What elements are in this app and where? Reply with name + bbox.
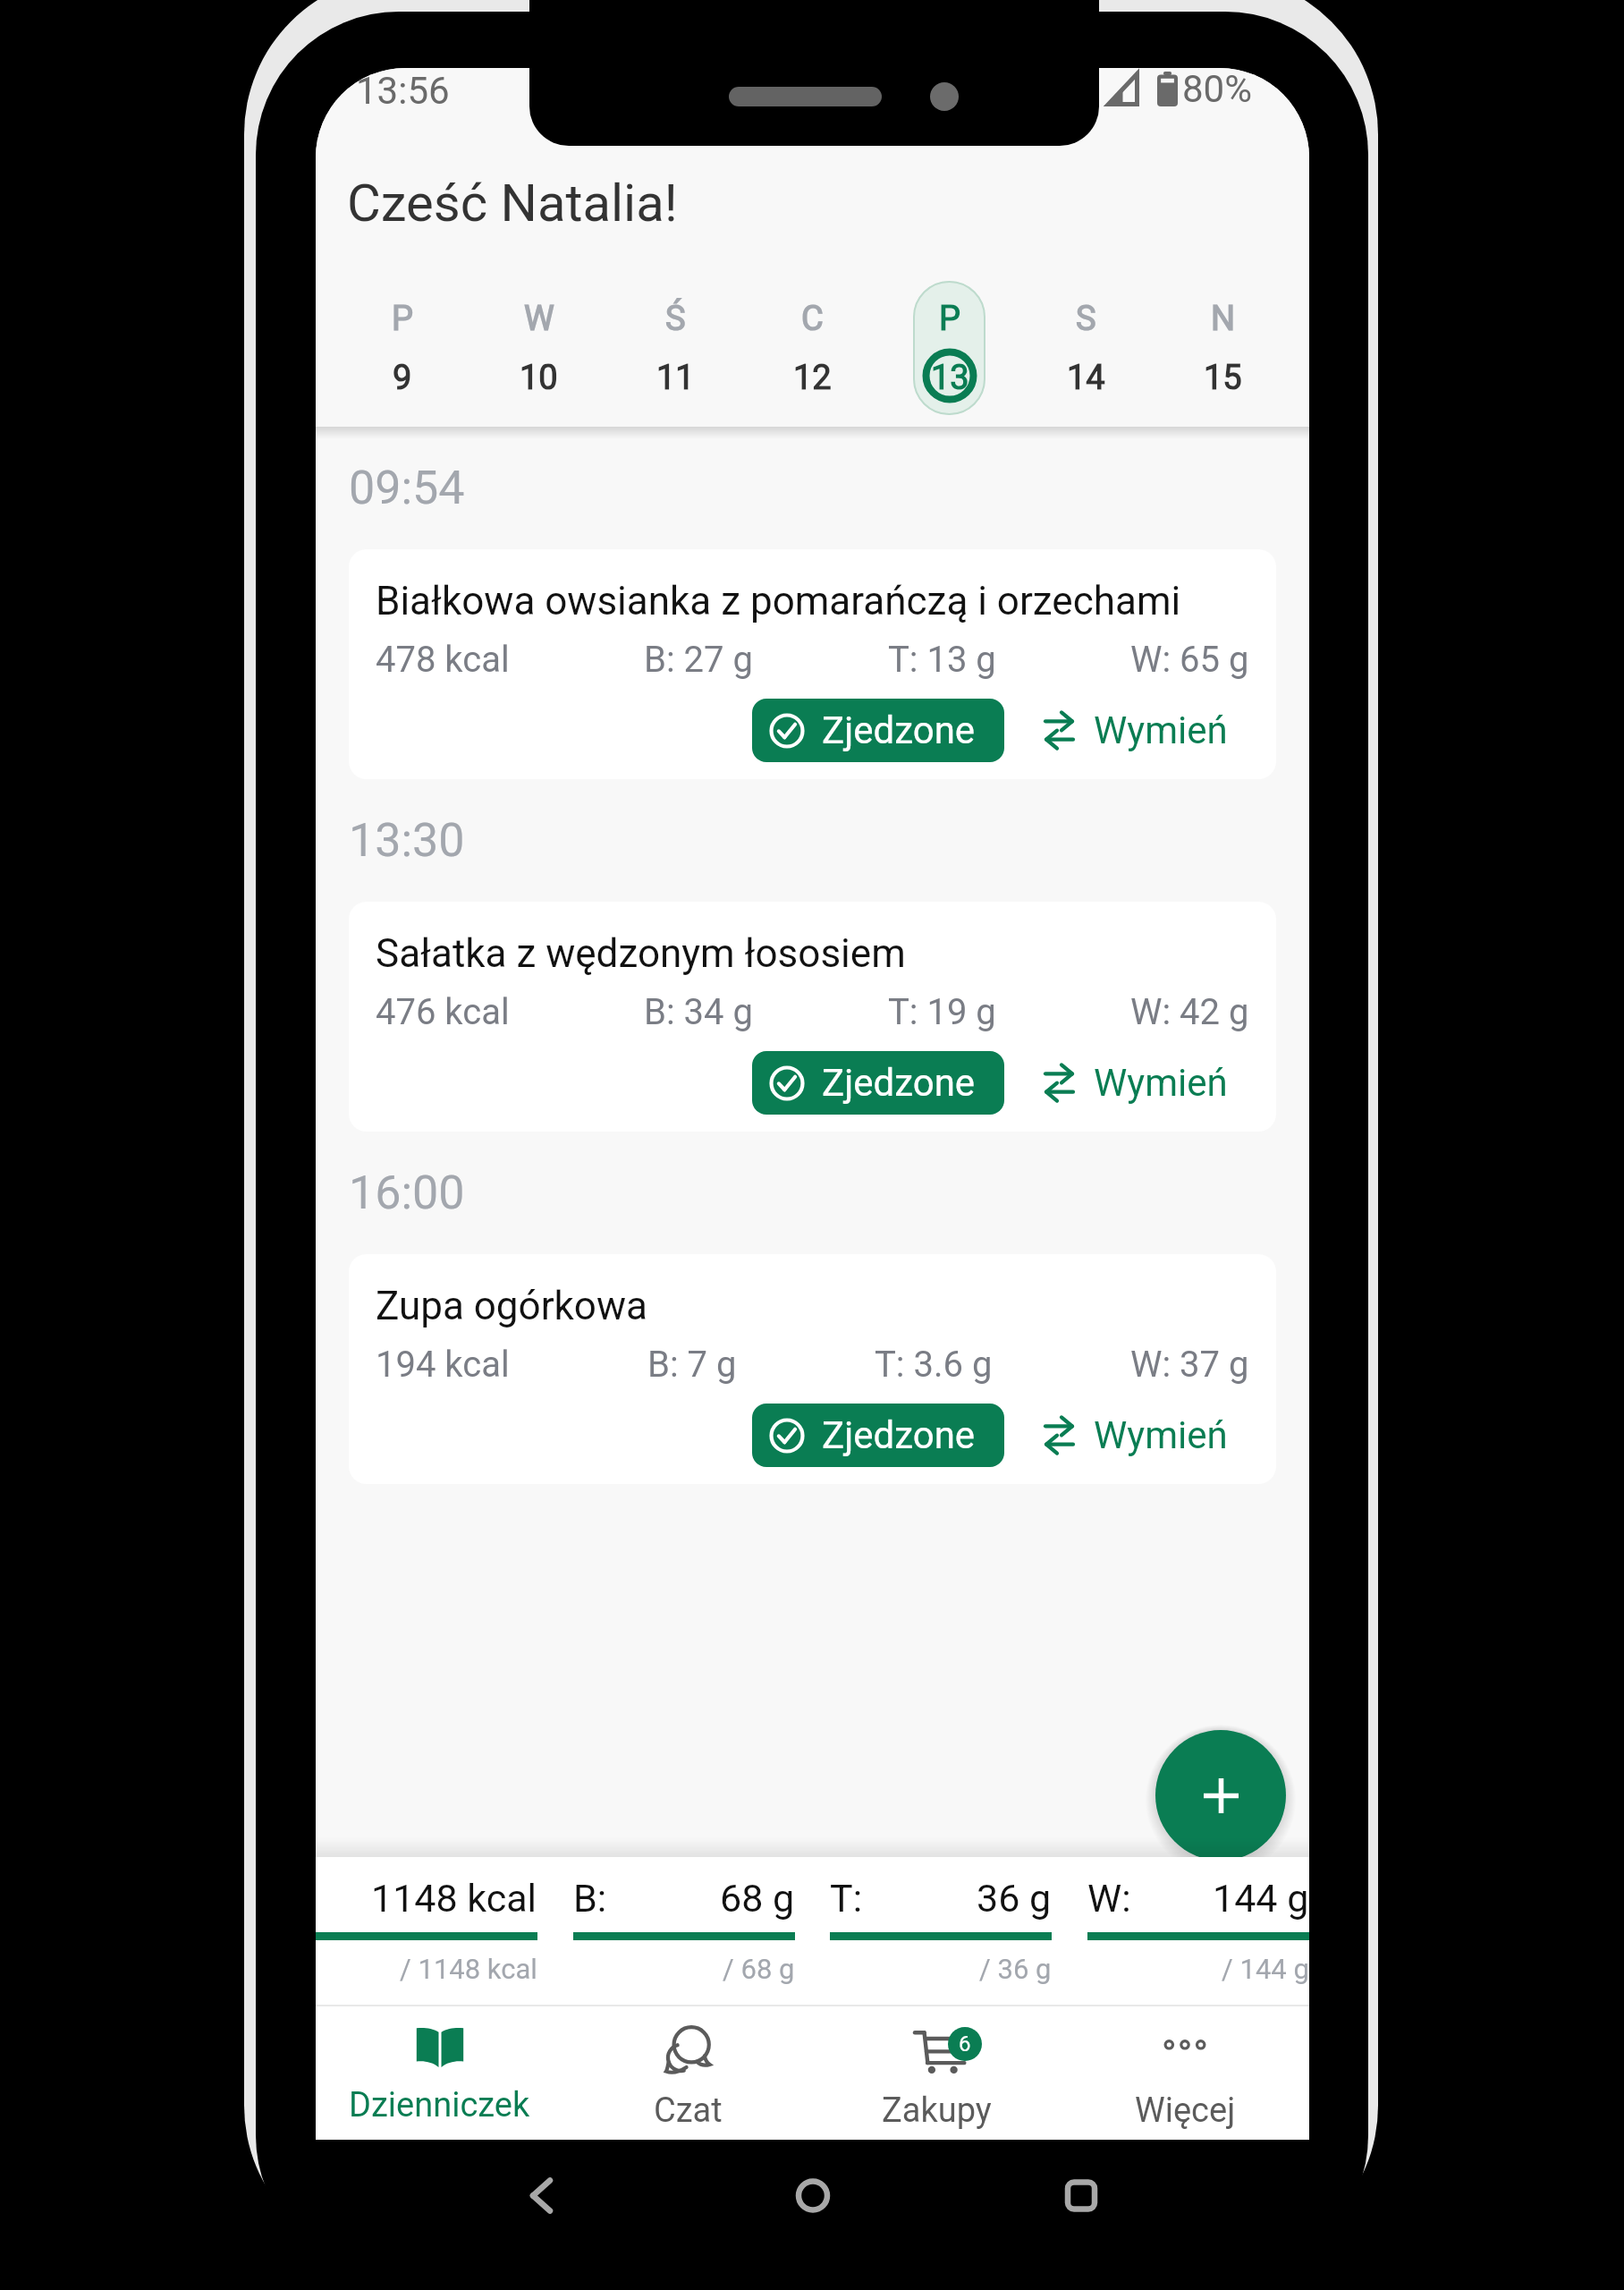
staticText: Ś [665, 299, 686, 339]
button[interactable]: Zjedzone [752, 699, 1004, 762]
staticText: B: [573, 1876, 607, 1921]
staticText: 6 [959, 2031, 971, 2057]
button[interactable]: Więcej [1061, 2006, 1309, 2140]
button[interactable]: Sałatka z wędzonym łososiem [349, 902, 1276, 1132]
staticText: / 36 g [979, 1953, 1052, 1985]
button[interactable]: Wymień [1019, 1052, 1249, 1114]
staticText: T: [830, 1876, 863, 1921]
staticText: / 68 g [723, 1953, 795, 1985]
staticText: W: [1087, 1876, 1131, 1921]
button[interactable]: Zjedzone [752, 1404, 1004, 1467]
staticText: C [801, 299, 824, 339]
button[interactable]: S [1018, 276, 1155, 420]
staticText: / 144 g [1222, 1953, 1309, 1985]
staticText: Zupa ogórkowa [376, 1283, 647, 1329]
staticText: Zjedzone [822, 1413, 976, 1457]
staticText: Więcej [1135, 2091, 1236, 2131]
button[interactable]: P [881, 276, 1018, 420]
staticText: P [939, 299, 960, 339]
staticText: 13:30 [349, 813, 465, 868]
staticText: 16:00 [349, 1166, 465, 1220]
staticText: 476 kcal [376, 991, 510, 1033]
staticText: Białkowa owsianka z pomarańczą i orzecha… [376, 578, 1181, 624]
staticText: Sałatka z wędzonym łososiem [376, 930, 906, 977]
button[interactable]: Dzienniczek [316, 2006, 563, 2140]
staticText: Czat [654, 2091, 723, 2131]
button[interactable]: N [1155, 276, 1291, 420]
button[interactable]: C [744, 276, 881, 420]
staticText: N [1211, 299, 1236, 339]
button[interactable]: Białkowa owsianka z pomarańczą i orzecha… [349, 549, 1276, 779]
button[interactable]: Czat [563, 2006, 812, 2140]
staticText: B: 7 g [647, 1344, 737, 1386]
staticText: / 1148 kcal [400, 1953, 537, 1985]
staticText: T: 19 g [888, 991, 996, 1033]
button[interactable]: Dodaj posiłek [1155, 1730, 1286, 1861]
button[interactable]: Wymień [1019, 1404, 1249, 1466]
button[interactable]: Zjedzone [752, 1051, 1004, 1115]
staticText: 1148 kcal [371, 1876, 537, 1921]
staticText: P [392, 299, 413, 339]
staticText: B: 27 g [644, 639, 753, 681]
button[interactable]: P [334, 276, 470, 420]
staticText: B: 34 g [644, 991, 753, 1033]
button[interactable]: Wymień [1019, 700, 1249, 761]
button[interactable]: Ś [607, 276, 744, 420]
staticText: 13:56 [356, 69, 450, 113]
staticText: 9 [393, 358, 412, 398]
staticText: 68 g [720, 1876, 795, 1921]
staticText: Dzienniczek [349, 2085, 530, 2125]
staticText: Wymień [1094, 708, 1228, 752]
staticText: Cześć Natalia! [347, 173, 678, 233]
button[interactable]: W [470, 276, 607, 420]
staticText: 10 [520, 358, 558, 398]
button[interactable]: Zupa ogórkowa [349, 1254, 1276, 1484]
staticText: 14 [1067, 358, 1105, 398]
staticText: 144 g [1213, 1876, 1309, 1921]
staticText: T: 13 g [888, 639, 996, 681]
staticText: 15 [1204, 358, 1242, 398]
staticText: 09:54 [349, 461, 465, 515]
staticText: W: 42 g [1130, 991, 1249, 1033]
button[interactable]: 6 [812, 2006, 1061, 2140]
staticText: Wymień [1094, 1413, 1228, 1457]
staticText: 478 kcal [376, 639, 510, 681]
staticText: Zjedzone [822, 708, 976, 752]
staticText: 194 kcal [376, 1344, 510, 1386]
staticText: T: 3.6 g [875, 1344, 993, 1386]
staticText: 36 g [977, 1876, 1052, 1921]
staticText: Zjedzone [822, 1061, 976, 1105]
staticText: 80% [1182, 68, 1252, 111]
staticText: Zakupy [882, 2091, 992, 2131]
staticText: W: 65 g [1130, 639, 1249, 681]
staticText: 12 [793, 358, 832, 398]
staticText: 13 [931, 358, 969, 398]
staticText: S [1076, 299, 1096, 339]
staticText: W: 37 g [1130, 1344, 1249, 1386]
staticText: 11 [656, 358, 695, 398]
staticText: W [524, 299, 554, 339]
staticText: Wymień [1094, 1061, 1228, 1105]
